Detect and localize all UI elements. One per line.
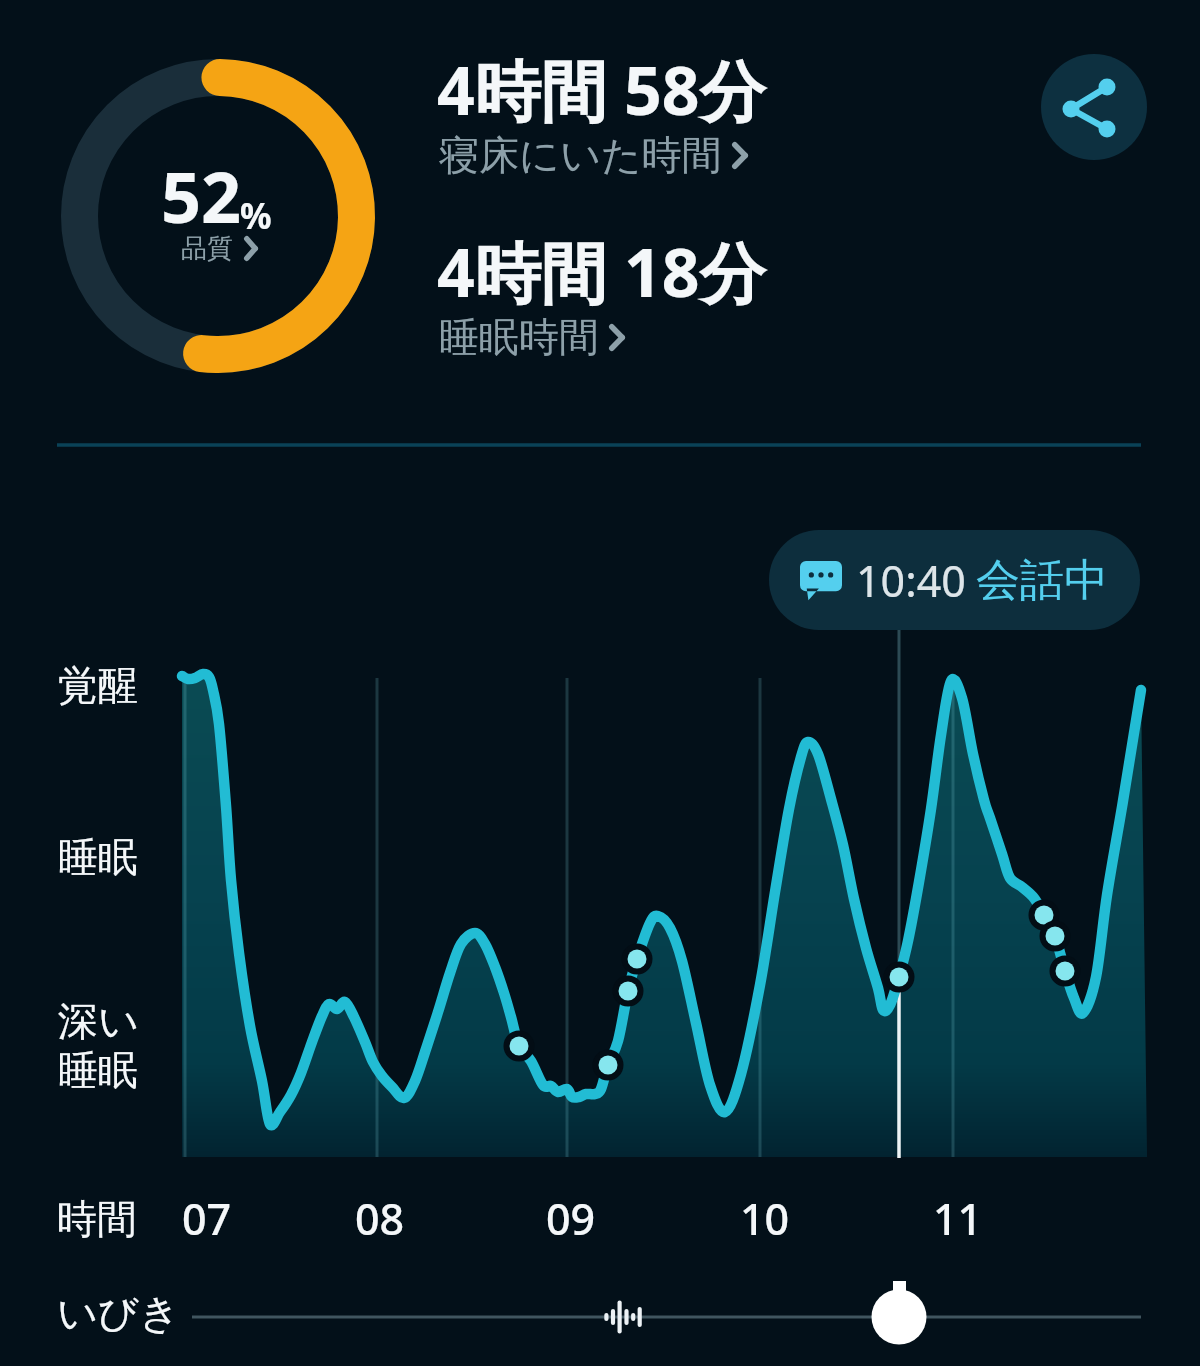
- staticText: 深い 睡眠: [58, 996, 139, 1095]
- staticText: 09: [546, 1189, 596, 1248]
- button[interactable]: 4時間 58分: [437, 44, 766, 184]
- staticText: 07: [182, 1189, 232, 1248]
- staticText: %: [240, 192, 272, 240]
- button[interactable]: Share: [1041, 54, 1147, 160]
- staticText: 08: [355, 1189, 405, 1248]
- button[interactable]: Snoring playback position: [871, 1281, 927, 1353]
- button[interactable]: Snoring audio clip: [600, 1296, 646, 1338]
- staticText: いびき: [57, 1288, 180, 1338]
- staticText: 10:40: [856, 551, 966, 610]
- staticText: 会話中: [976, 553, 1108, 608]
- staticText: 睡眠: [58, 832, 138, 882]
- button[interactable]: 10:40: [769, 530, 1140, 630]
- staticText: 10: [740, 1189, 790, 1248]
- button[interactable]: 52: [148, 148, 293, 273]
- staticText: 睡眠時間: [439, 312, 599, 362]
- staticText: 4時間 18分: [437, 226, 766, 316]
- staticText: 4時間 58分: [437, 44, 766, 134]
- staticText: 覚醒: [58, 660, 138, 710]
- staticText: 52: [161, 148, 242, 243]
- staticText: 11: [933, 1189, 983, 1248]
- staticText: 時間: [57, 1194, 137, 1244]
- button[interactable]: 4時間 18分: [437, 226, 766, 366]
- staticText: 品質: [181, 232, 233, 265]
- staticText: 寝床にいた時間: [439, 130, 722, 180]
